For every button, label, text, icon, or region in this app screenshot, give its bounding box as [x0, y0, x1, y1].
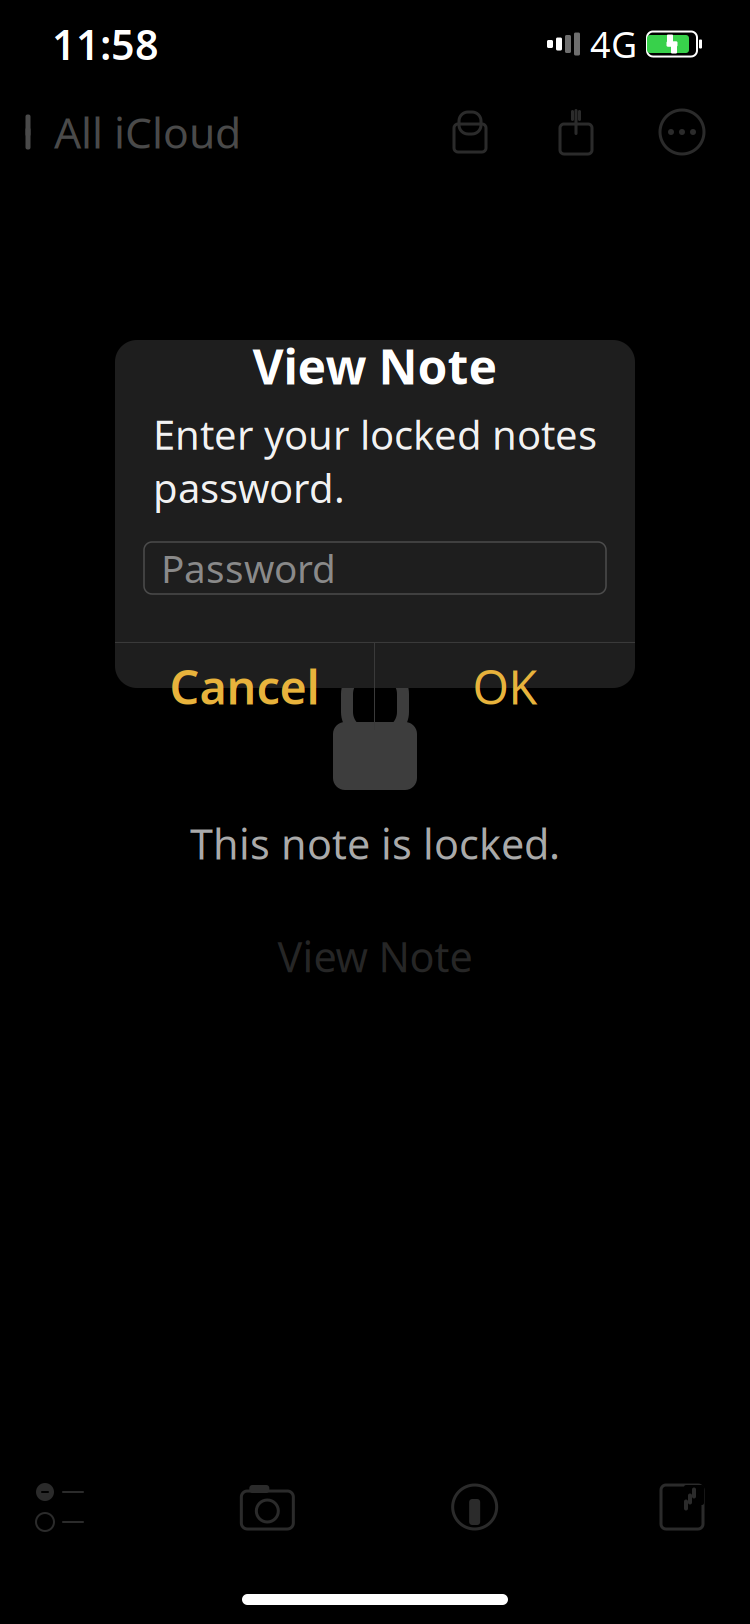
staticText: Enter your locked notes password.	[153, 408, 597, 514]
button[interactable]: More	[640, 90, 724, 174]
button[interactable]: OK	[375, 643, 635, 730]
staticText: 4G	[590, 20, 637, 68]
staticText: 11:58	[52, 17, 159, 71]
staticText: Cancel	[169, 655, 319, 717]
staticText: View Note	[252, 334, 497, 398]
staticText: View Note	[277, 929, 472, 984]
button[interactable]: Cancel	[115, 643, 374, 730]
button[interactable]: All iCloud	[0, 90, 253, 174]
button[interactable]: Lock Note	[428, 90, 512, 174]
button[interactable]: Camera	[209, 1459, 325, 1555]
staticText: Password	[161, 542, 336, 594]
staticText: OK	[472, 655, 537, 717]
button[interactable]: Checklist	[2, 1459, 118, 1555]
button[interactable]: Share	[534, 90, 618, 174]
staticText: All iCloud	[54, 104, 241, 160]
staticText: This note is locked.	[190, 816, 560, 871]
button[interactable]: Markup	[417, 1459, 533, 1555]
button[interactable]: New Note	[624, 1459, 740, 1555]
button[interactable]: View Note	[277, 929, 472, 984]
